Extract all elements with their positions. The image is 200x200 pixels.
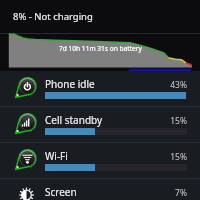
staticText: 15%: [147, 151, 187, 163]
staticText: Wi-Fi: [45, 149, 68, 163]
button[interactable]: Wi-Fi: [0, 143, 200, 179]
button[interactable]: Screen: [0, 179, 200, 200]
staticText: 8% - Not charging: [13, 10, 93, 23]
other: Cell standby: [14, 111, 38, 135]
staticText: Cell standby: [45, 113, 103, 127]
staticText: Phone idle: [45, 77, 95, 91]
staticText: 7%: [147, 187, 187, 199]
button[interactable]: Phone idle: [0, 71, 200, 107]
other: Screen: [14, 183, 38, 200]
staticText: 43%: [147, 79, 187, 91]
other: Phone idle: [14, 75, 38, 99]
other: Wi-Fi: [14, 147, 38, 171]
staticText: 15%: [147, 115, 187, 127]
staticText: Screen: [45, 185, 77, 199]
staticText: 7d 10h 11m 31s on battery: [59, 44, 142, 53]
button[interactable]: Cell standby: [0, 107, 200, 143]
